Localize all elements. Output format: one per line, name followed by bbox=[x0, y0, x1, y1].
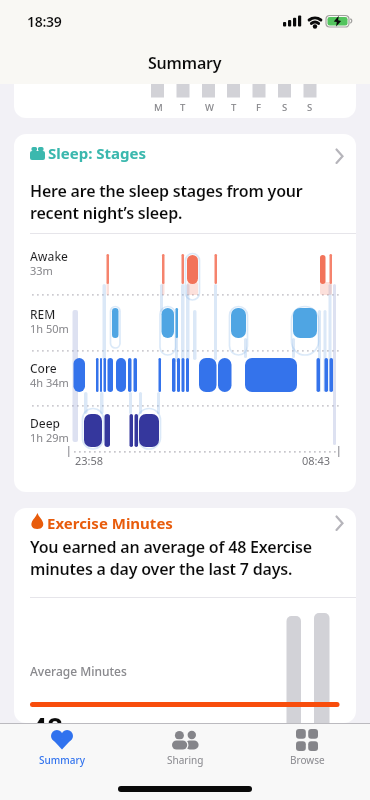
button[interactable]: Browse bbox=[263, 726, 351, 784]
button[interactable]: Summary bbox=[18, 726, 106, 784]
staticText: 1h 50m bbox=[30, 321, 69, 336]
staticText: 33m bbox=[30, 263, 53, 278]
button[interactable]: M bbox=[14, 56, 356, 118]
staticText: Summary bbox=[39, 753, 85, 767]
staticText: F bbox=[256, 101, 262, 114]
staticText: S bbox=[282, 101, 288, 114]
staticText: Here are the sleep stages from your rece… bbox=[30, 180, 303, 224]
button[interactable]: Exercise Minutes bbox=[14, 508, 356, 723]
staticText: Sleep: Stages bbox=[48, 143, 146, 163]
staticText: 08:43 bbox=[302, 453, 331, 468]
staticText: 23:58 bbox=[75, 453, 104, 468]
staticText: T bbox=[180, 101, 186, 114]
staticText: Deep bbox=[30, 415, 60, 431]
button[interactable]: Sleep: Stages bbox=[14, 134, 356, 492]
staticText: You earned an average of 48 Exercise min… bbox=[30, 536, 312, 580]
staticText: Browse bbox=[290, 753, 325, 767]
staticText: Average Minutes bbox=[30, 663, 127, 679]
staticText: M bbox=[154, 101, 163, 114]
staticText: Sharing bbox=[167, 753, 204, 767]
staticText: T bbox=[231, 101, 237, 114]
button[interactable]: Sharing bbox=[141, 726, 229, 784]
staticText: 1h 29m bbox=[30, 430, 69, 445]
staticText: 48 bbox=[31, 709, 64, 723]
staticText: Core bbox=[30, 360, 57, 376]
staticText: 4h 34m bbox=[30, 375, 69, 390]
staticText: W bbox=[205, 101, 214, 114]
staticText: S bbox=[307, 101, 313, 114]
staticText: Exercise Minutes bbox=[47, 513, 173, 533]
staticText: Awake bbox=[30, 248, 69, 264]
staticText: Summary bbox=[148, 52, 222, 74]
staticText: 18:39 bbox=[27, 12, 62, 31]
staticText: REM bbox=[30, 306, 56, 322]
